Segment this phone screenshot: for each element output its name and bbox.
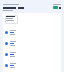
button[interactable] <box>3 60 61 71</box>
button[interactable] <box>3 38 61 49</box>
button[interactable]: Status <box>53 6 58 9</box>
button[interactable] <box>3 27 61 38</box>
button[interactable] <box>3 49 61 60</box>
button[interactable] <box>5 15 18 24</box>
